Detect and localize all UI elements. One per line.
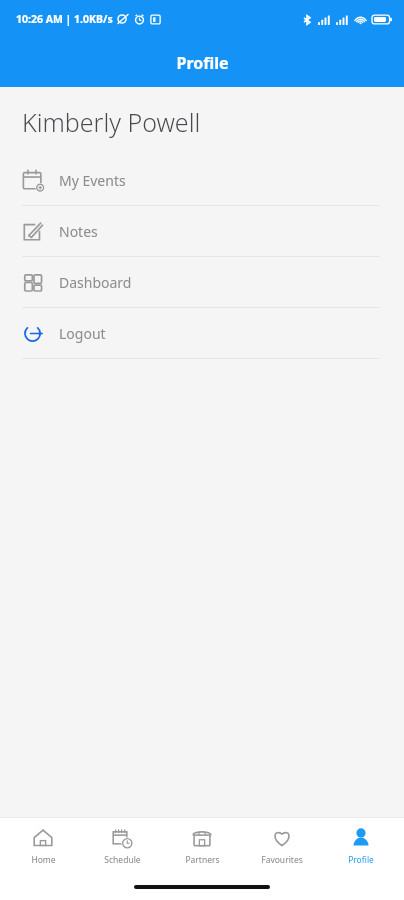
button[interactable]: Notes	[0, 206, 404, 257]
button[interactable]: Home	[6, 827, 80, 866]
staticText: Dashboard	[59, 273, 132, 292]
staticText: Partners	[185, 854, 220, 866]
staticText: Notes	[59, 222, 98, 241]
staticText: 10:26 AM | 1.0KB/s	[16, 12, 113, 26]
button[interactable]: My Events	[0, 155, 404, 206]
staticText: Home	[31, 854, 56, 866]
staticText: Kimberly Powell	[22, 105, 201, 139]
button[interactable]: Logout	[0, 308, 404, 359]
staticText: Favourites	[261, 854, 303, 866]
staticText: Logout	[59, 324, 106, 343]
button[interactable]: Dashboard	[0, 257, 404, 308]
staticText: Profile	[176, 52, 229, 74]
button[interactable]: Favourites	[245, 827, 319, 866]
button[interactable]: Profile	[324, 827, 398, 866]
staticText: My Events	[59, 171, 126, 190]
button[interactable]: Partners	[165, 827, 239, 866]
staticText: Profile	[348, 854, 374, 866]
staticText: Schedule	[104, 854, 141, 866]
button[interactable]: Schedule	[85, 827, 159, 866]
